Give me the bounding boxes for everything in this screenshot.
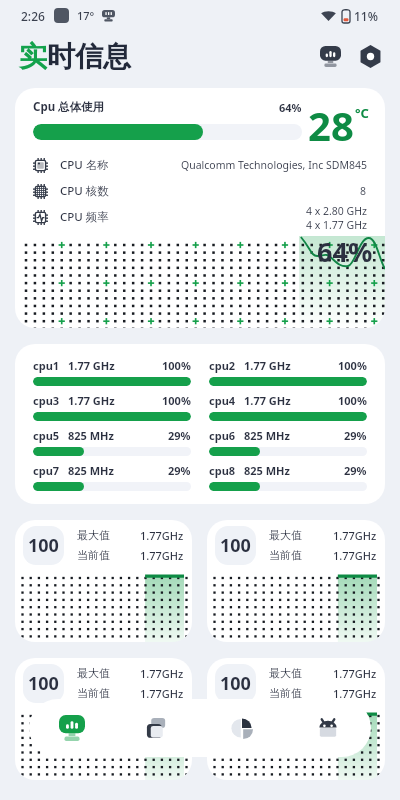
staticText: 100 (28, 533, 59, 558)
staticText: cpu4 (209, 393, 236, 408)
staticText: 1.77GHz (140, 528, 184, 543)
staticText: 29% (168, 428, 191, 443)
staticText: 1.77 GHz (68, 358, 115, 373)
staticText: 100 (220, 533, 251, 558)
staticText: 1.77 GHz (244, 393, 291, 408)
button[interactable]: Apps (114, 699, 199, 757)
staticText: cpu5 (33, 428, 60, 443)
staticText: 64% (317, 233, 373, 270)
staticText: 当前值 (77, 686, 110, 700)
staticText: 29% (344, 428, 367, 443)
staticText: 4 x 1.77 GHz (306, 218, 367, 230)
staticText: 29% (344, 463, 367, 478)
staticText: 4 x 2.80 GHz (306, 204, 367, 218)
staticText: 1.77 GHz (244, 358, 291, 373)
staticText: 最大值 (269, 666, 302, 680)
staticText: 100 (28, 671, 59, 696)
staticText: 时信息 (47, 39, 131, 74)
staticText: 825 MHz (68, 463, 114, 478)
staticText: 1.77GHz (333, 666, 377, 681)
staticText: 1.77GHz (140, 666, 184, 681)
button[interactable]: Realtime (29, 699, 114, 757)
staticText: Cpu 总体使用 (33, 99, 105, 115)
staticText: CPU 名称 (60, 157, 109, 173)
staticText: cpu6 (209, 428, 236, 443)
staticText: 最大值 (269, 528, 302, 542)
staticText: 1.77GHz (333, 548, 377, 563)
staticText: 当前值 (77, 548, 110, 562)
staticText: 100% (338, 393, 367, 408)
staticText: 1.77GHz (140, 548, 184, 563)
staticText: 11% (354, 8, 378, 24)
staticText: cpu3 (33, 393, 60, 408)
button[interactable]: Device (285, 699, 371, 757)
staticText: 当前值 (269, 548, 302, 562)
staticText: CPU 频率 (60, 209, 109, 225)
staticText: cpu1 (33, 358, 60, 373)
staticText: 100% (162, 393, 191, 408)
staticText: 100 (220, 671, 251, 696)
button[interactable]: Monitor (312, 38, 348, 74)
staticText: 100% (162, 358, 191, 373)
staticText: 实 (19, 39, 47, 74)
staticText: 1.77GHz (333, 686, 377, 701)
staticText: 64% (279, 100, 302, 115)
staticText: 2:26 (21, 8, 45, 24)
staticText: 1.77GHz (140, 686, 184, 701)
staticText: Qualcomm Technologies, Inc SDM845 (181, 158, 367, 172)
staticText: cpu8 (209, 463, 236, 478)
staticText: 100% (338, 358, 367, 373)
staticText: 28 (308, 98, 354, 152)
staticText: 825 MHz (244, 463, 290, 478)
staticText: 825 MHz (244, 428, 290, 443)
staticText: CPU 核数 (60, 183, 109, 199)
staticText: 29% (168, 463, 191, 478)
staticText: 8 (360, 184, 367, 198)
staticText: 1.77 GHz (68, 393, 115, 408)
staticText: 825 MHz (68, 428, 114, 443)
button[interactable]: Settings (352, 38, 388, 74)
staticText: 当前值 (269, 686, 302, 700)
staticText: 最大值 (77, 528, 110, 542)
button[interactable]: Stats (199, 699, 285, 757)
staticText: cpu7 (33, 463, 60, 478)
staticText: 1.77GHz (333, 528, 377, 543)
staticText: 最大值 (77, 666, 110, 680)
staticText: cpu2 (209, 358, 236, 373)
staticText: °C (355, 104, 369, 122)
staticText: 17° (77, 8, 95, 23)
